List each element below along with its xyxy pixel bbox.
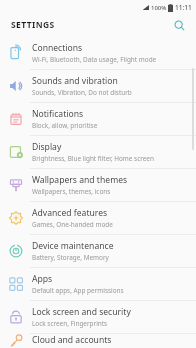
staticText: Apps — [32, 273, 53, 285]
staticText: Device maintenance — [32, 240, 114, 252]
staticText: Wallpapers, themes, icons — [32, 187, 111, 196]
staticText: SETTINGS — [11, 19, 55, 31]
staticText: Sounds and vibration — [32, 75, 118, 87]
staticText: Connections — [32, 42, 83, 54]
staticText: Games, One-handed mode — [32, 220, 113, 229]
staticText: 11:11 — [175, 3, 192, 12]
button[interactable]: Cloud and accounts — [0, 334, 196, 348]
button[interactable]: Display — [0, 136, 196, 168]
button[interactable]: Search — [170, 16, 188, 34]
staticText: Cloud and accounts — [32, 334, 112, 346]
staticText: 100% — [151, 4, 167, 12]
staticText: Lock screen, Fingerprints — [32, 319, 108, 328]
button[interactable]: Notifications — [0, 103, 196, 135]
button[interactable]: Device maintenance — [0, 235, 196, 267]
staticText: Advanced features — [32, 207, 108, 219]
staticText: Block, allow, prioritise — [32, 121, 98, 130]
button[interactable]: Lock screen and security — [0, 301, 196, 333]
staticText: Default apps, App permissions — [32, 286, 124, 295]
staticText: Wi-Fi, Bluetooth, Data usage, Flight mod… — [32, 55, 157, 64]
staticText: Battery, Storage, Memory — [32, 253, 109, 262]
button[interactable]: Apps — [0, 268, 196, 300]
staticText: Notifications — [32, 108, 84, 120]
button[interactable]: Connections — [0, 36, 196, 69]
staticText: Brightness, Blue light filter, Home scre… — [32, 154, 154, 163]
button[interactable]: Wallpapers and themes — [0, 169, 196, 201]
button[interactable]: Advanced features — [0, 202, 196, 234]
staticText: Wallpapers and themes — [32, 174, 128, 186]
staticText: Lock screen and security — [32, 306, 131, 318]
staticText: Display — [32, 141, 62, 153]
staticText: Sounds, Vibration, Do not disturb — [32, 88, 132, 97]
button[interactable]: Sounds and vibration — [0, 70, 196, 102]
